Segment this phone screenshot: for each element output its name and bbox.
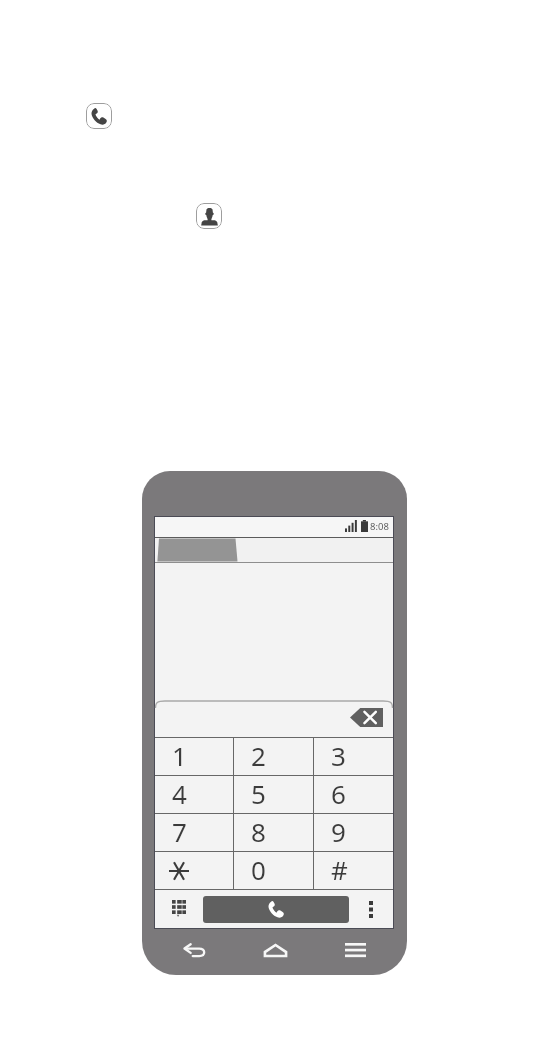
staticText: # bbox=[331, 852, 348, 886]
staticText: 7 bbox=[172, 814, 187, 848]
button[interactable]: 3 bbox=[314, 738, 393, 775]
staticText: 8:08 bbox=[370, 520, 389, 533]
button[interactable]: 6 bbox=[314, 776, 393, 813]
button[interactable] bbox=[155, 852, 233, 889]
button[interactable]: More options bbox=[349, 890, 393, 928]
button[interactable]: Recents bbox=[315, 934, 395, 966]
staticText: 3 bbox=[331, 738, 346, 772]
button[interactable]: 0 bbox=[234, 852, 313, 889]
button[interactable]: Home bbox=[235, 934, 315, 966]
staticText: 9 bbox=[331, 814, 346, 848]
staticText: 6 bbox=[331, 776, 346, 810]
button[interactable]: 5 bbox=[234, 776, 313, 813]
button[interactable]: Keypad tab bbox=[155, 537, 393, 563]
staticText: 1 bbox=[172, 738, 187, 772]
button[interactable]: Back bbox=[155, 934, 235, 966]
button[interactable]: 2 bbox=[234, 738, 313, 775]
button[interactable]: # bbox=[314, 852, 393, 889]
button[interactable]: 7 bbox=[155, 814, 233, 851]
button[interactable]: Backspace bbox=[350, 708, 383, 727]
button[interactable]: 1 bbox=[155, 738, 233, 775]
staticText: 5 bbox=[251, 776, 266, 810]
button[interactable]: Call bbox=[203, 896, 349, 923]
button[interactable]: Contacts bbox=[196, 203, 222, 229]
button[interactable]: Phone bbox=[86, 103, 112, 129]
staticText: 4 bbox=[172, 776, 187, 810]
staticText: 0 bbox=[251, 852, 266, 886]
staticText: 2 bbox=[251, 738, 266, 772]
button[interactable]: 4 bbox=[155, 776, 233, 813]
staticText: 8 bbox=[251, 814, 266, 848]
button[interactable]: 9 bbox=[314, 814, 393, 851]
button[interactable]: Dialpad bbox=[155, 890, 203, 928]
button[interactable]: 8 bbox=[234, 814, 313, 851]
